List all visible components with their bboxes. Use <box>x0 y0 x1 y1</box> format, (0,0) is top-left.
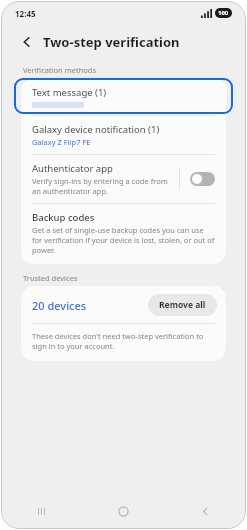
staticText: 100 <box>218 9 229 17</box>
staticText: These devices don't need two-step verifi… <box>32 331 212 351</box>
staticText: Authenticator app <box>32 162 113 175</box>
staticText: Trusted devices <box>23 273 78 283</box>
staticText: Galaxy Z Flip7 FE <box>32 137 91 147</box>
button[interactable]: Backup codes <box>21 204 226 264</box>
button[interactable]: Recents <box>1 493 82 529</box>
staticText: Verify sign-ins by entering a code from … <box>32 176 173 196</box>
button[interactable]: Authenticator app toggle <box>187 169 218 189</box>
staticText: 12:45 <box>15 8 36 19</box>
button[interactable]: 20 devices <box>32 298 87 313</box>
button[interactable]: Back <box>15 30 39 54</box>
staticText: Two-step verification <box>43 33 180 51</box>
button[interactable]: Text message (1) <box>21 78 226 115</box>
button[interactable]: Remove all <box>148 294 217 316</box>
staticText: Remove all <box>159 299 206 311</box>
staticText: Get a set of single-use backup codes you… <box>32 225 215 255</box>
staticText: Verification methods <box>23 65 97 75</box>
button[interactable]: Home <box>82 493 164 529</box>
button[interactable]: Authenticator app <box>21 155 226 203</box>
staticText: Text message (1) <box>32 86 107 99</box>
button[interactable]: Back <box>164 493 246 529</box>
staticText: Backup codes <box>32 211 95 224</box>
staticText: Galaxy device notification (1) <box>32 123 160 136</box>
button[interactable]: Galaxy device notification (1) <box>21 116 226 154</box>
